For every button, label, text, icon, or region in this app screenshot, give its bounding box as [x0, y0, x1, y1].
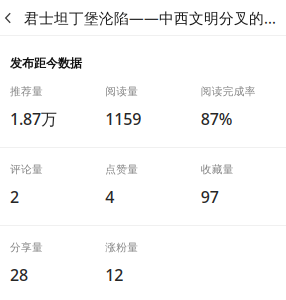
- staticText: 收藏量: [201, 163, 234, 176]
- staticText: 涨粉量: [105, 241, 138, 254]
- staticText: 2: [10, 186, 19, 207]
- staticText: 推荐量: [10, 85, 43, 98]
- staticText: 12: [105, 264, 123, 285]
- staticText: 君士坦丁堡沦陷——中西文明分叉的...: [24, 8, 276, 28]
- staticText: 分享量: [10, 241, 43, 254]
- staticText: 评论量: [10, 163, 43, 176]
- button[interactable]: Back: [0, 0, 16, 36]
- staticText: 87%: [201, 108, 233, 129]
- staticText: 28: [10, 264, 28, 285]
- staticText: 阅读量: [105, 85, 138, 98]
- staticText: 1.87万: [10, 108, 57, 129]
- staticText: 1159: [105, 108, 141, 129]
- staticText: 阅读完成率: [201, 85, 256, 98]
- staticText: 4: [105, 186, 114, 207]
- staticText: 97: [201, 186, 219, 207]
- staticText: 发布距今数据: [10, 56, 82, 71]
- staticText: 点赞量: [105, 163, 138, 176]
